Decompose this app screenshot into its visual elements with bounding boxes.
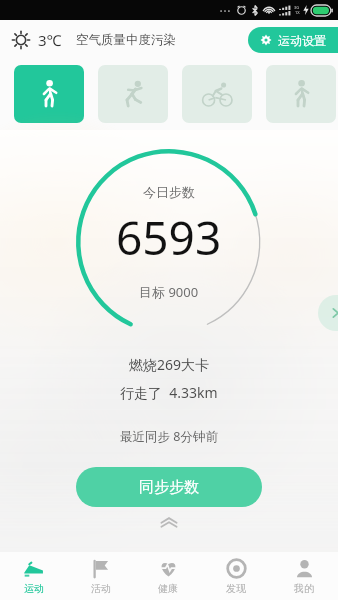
- button[interactable]: Expand: [152, 513, 186, 531]
- button[interactable]: Activity: [182, 65, 252, 123]
- staticText: 空气质量中度污染: [76, 32, 176, 48]
- button[interactable]: Activity: [98, 65, 168, 123]
- staticText: 燃烧269大卡: [129, 355, 210, 374]
- button[interactable]: 运动设置: [248, 27, 338, 53]
- button[interactable]: Walking: [14, 65, 84, 123]
- staticText: 3G: [294, 5, 300, 10]
- button[interactable]: 同步步数: [76, 467, 262, 507]
- staticText: 健康: [158, 582, 178, 595]
- staticText: 目标 9000: [139, 283, 199, 301]
- button[interactable]: Next: [318, 295, 338, 331]
- staticText: 运动: [24, 582, 44, 595]
- staticText: 我的: [294, 582, 314, 595]
- staticText: 运动设置: [278, 33, 326, 48]
- staticText: 行走了 4.33km: [120, 383, 218, 402]
- staticText: 同步步数: [139, 478, 199, 497]
- staticText: 活动: [91, 582, 111, 595]
- button[interactable]: 健康: [134, 552, 202, 600]
- staticText: 最近同步 8分钟前: [120, 428, 218, 445]
- staticText: 6593: [116, 206, 222, 269]
- staticText: 发现: [226, 582, 246, 595]
- button[interactable]: 我的: [270, 552, 338, 600]
- button[interactable]: 活动: [67, 552, 134, 600]
- staticText: 3℃: [38, 30, 62, 50]
- button[interactable]: 发现: [202, 552, 270, 600]
- button[interactable]: Activity: [266, 65, 336, 123]
- staticText: 今日步数: [143, 184, 195, 200]
- staticText: 1X: [295, 10, 300, 15]
- button[interactable]: 运动: [0, 552, 67, 600]
